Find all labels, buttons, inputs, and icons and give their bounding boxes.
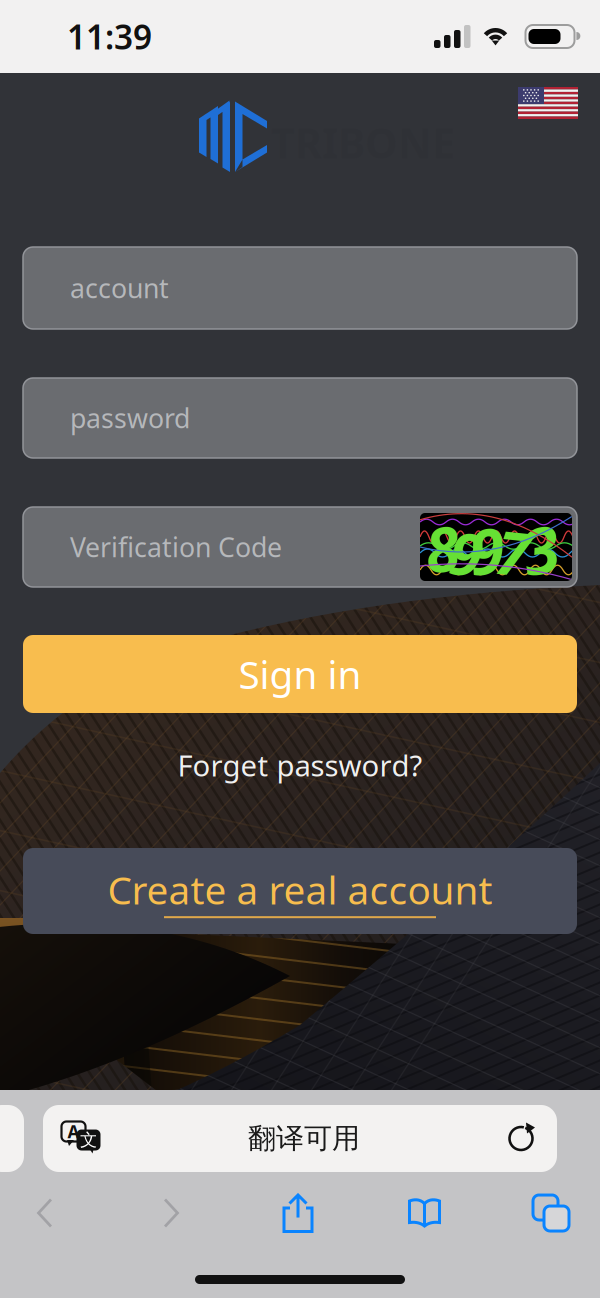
- staticText: account: [70, 270, 169, 306]
- button[interactable]: password: [0, 378, 600, 458]
- button[interactable]: Share: [254, 1186, 342, 1240]
- staticText: Sign in: [238, 648, 361, 700]
- staticText: 翻译可用: [248, 1121, 360, 1156]
- button[interactable]: Forward: [127, 1186, 215, 1240]
- button[interactable]: account: [0, 247, 600, 329]
- button[interactable]: A: [0, 1105, 600, 1172]
- staticText: 9: [450, 514, 482, 592]
- staticText: 7: [496, 512, 529, 592]
- staticText: Forget password?: [177, 745, 422, 784]
- staticText: Create a real account: [107, 864, 492, 915]
- button[interactable]: Language: [518, 73, 600, 119]
- staticText: 文: [80, 1129, 97, 1151]
- staticText: A: [67, 1120, 79, 1143]
- button[interactable]: Create a real account: [0, 848, 600, 934]
- staticText: 8: [425, 507, 459, 589]
- button[interactable]: Bookmarks: [380, 1186, 468, 1240]
- button[interactable]: Back: [1, 1186, 89, 1240]
- staticText: 11:39: [67, 14, 152, 59]
- staticText: password: [70, 400, 190, 436]
- button[interactable]: Sign in: [0, 635, 600, 713]
- staticText: Verification Code: [70, 529, 282, 565]
- staticText: 9: [469, 508, 504, 592]
- staticText: 3: [523, 506, 558, 591]
- button[interactable]: Verification Code: [0, 507, 600, 587]
- button[interactable]: Tabs: [507, 1186, 595, 1240]
